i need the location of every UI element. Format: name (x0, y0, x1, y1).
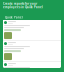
staticText: employees in Quick Panel (3, 5, 43, 9)
staticText: Create reports for your (3, 2, 37, 5)
staticText: Quick Panel (5, 16, 23, 19)
